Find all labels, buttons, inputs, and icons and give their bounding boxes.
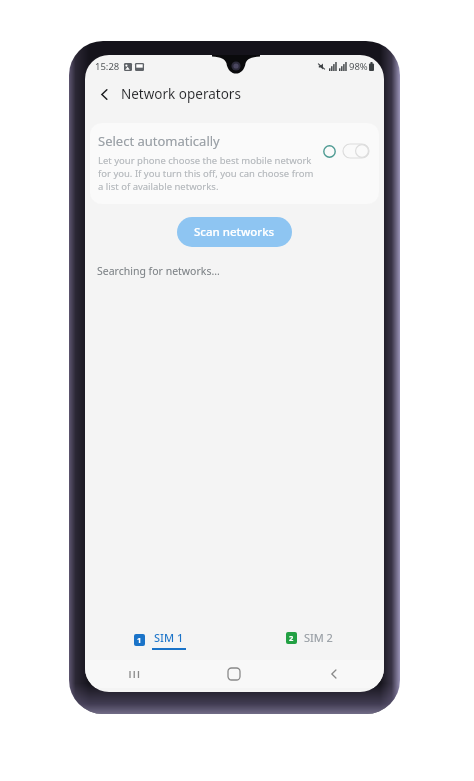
staticText: Let your phone choose the best mobile ne… xyxy=(98,154,315,193)
staticText: Select automatically xyxy=(98,132,220,150)
staticText: 98% xyxy=(349,60,368,73)
button[interactable]: Recent apps xyxy=(85,660,184,688)
staticText: Scan networks xyxy=(194,224,275,240)
staticText: 1 xyxy=(137,635,142,645)
button[interactable]: Home xyxy=(184,660,284,688)
staticText: 2 xyxy=(289,633,294,643)
button[interactable]: Select automatically xyxy=(90,123,379,204)
staticText: SIM 2 xyxy=(304,630,333,645)
staticText: 15:28 xyxy=(95,60,120,73)
button[interactable]: Scan networks xyxy=(177,217,292,247)
button[interactable]: Select automatically toggle xyxy=(343,144,369,158)
button[interactable]: 1 xyxy=(85,626,234,654)
button[interactable]: 2 xyxy=(234,626,384,654)
button[interactable]: Back xyxy=(89,79,119,109)
staticText: Searching for networks… xyxy=(97,264,220,278)
button[interactable]: Back xyxy=(284,660,384,688)
staticText: Network operators xyxy=(121,85,241,103)
staticText: SIM 1 xyxy=(154,630,184,645)
